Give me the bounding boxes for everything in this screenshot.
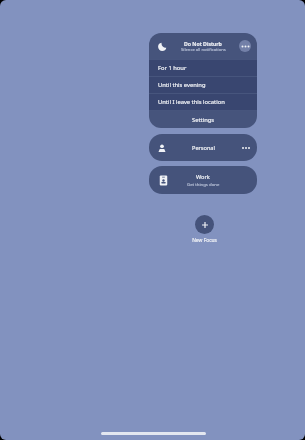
button[interactable]: Do Not Disturb [149, 33, 257, 59]
staticText: Do Not Disturb [184, 40, 222, 47]
staticText: New Focus [192, 237, 217, 244]
staticText: Work [196, 173, 210, 181]
staticText: Silence all notifications [181, 47, 226, 53]
button[interactable]: Settings [149, 111, 257, 128]
staticText: For 1 hour [158, 64, 187, 72]
staticText: Until I leave this location [158, 98, 225, 106]
button[interactable]: Personal [149, 134, 257, 161]
staticText: Until this evening [158, 81, 206, 89]
button[interactable]: Work [149, 166, 257, 194]
button[interactable]: Until I leave this location [149, 94, 257, 110]
button[interactable]: Until this evening [149, 77, 257, 93]
button[interactable]: For 1 hour [149, 60, 257, 76]
staticText: Settings [192, 116, 215, 124]
button[interactable]: New Focus [195, 215, 214, 234]
button[interactable]: More options [239, 40, 251, 52]
staticText: Get things done [187, 181, 220, 187]
staticText: Personal [192, 144, 215, 152]
